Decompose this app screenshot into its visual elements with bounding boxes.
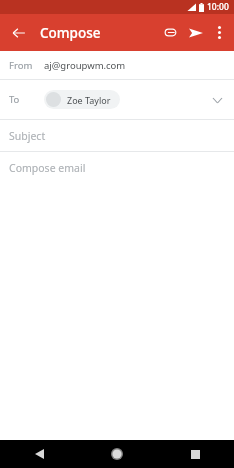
button[interactable]: Attach file [158, 20, 183, 45]
button[interactable]: Zoe Taylor [44, 90, 120, 109]
button[interactable]: Send [183, 20, 208, 45]
button[interactable]: To [0, 80, 234, 119]
button[interactable]: More options [208, 21, 231, 44]
staticText: Compose [40, 24, 101, 42]
button[interactable]: Home [78, 440, 156, 468]
staticText: From [9, 59, 33, 72]
staticText: Compose email [9, 161, 86, 175]
staticText: Zoe Taylor [67, 94, 111, 106]
staticText: To [9, 93, 20, 106]
staticText: 10:00 [207, 1, 229, 13]
button[interactable]: Compose email [0, 152, 234, 183]
button[interactable]: From [0, 51, 234, 79]
button[interactable]: Show Cc and Bcc [207, 90, 227, 110]
button[interactable]: Back [6, 20, 32, 46]
button[interactable]: Recent apps [156, 440, 234, 468]
staticText: aj@groupwm.com [44, 59, 126, 72]
button[interactable]: Subject [0, 120, 234, 151]
button[interactable]: Back [0, 440, 78, 468]
staticText: Subject [9, 129, 46, 143]
